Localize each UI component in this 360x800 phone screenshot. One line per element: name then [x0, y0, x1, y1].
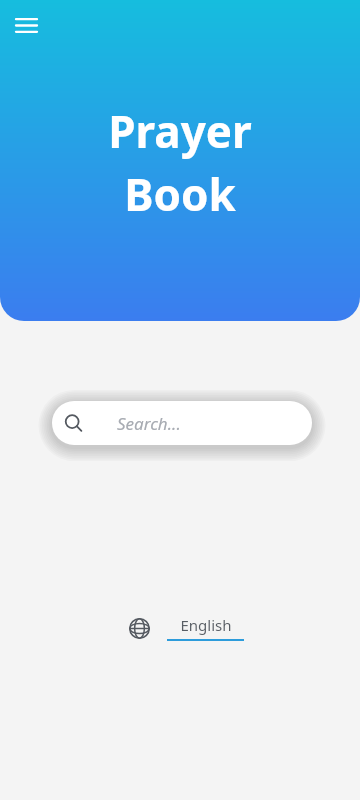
staticText: Search...: [117, 412, 181, 435]
staticText: English: [180, 615, 232, 635]
button[interactable]: Language: [129, 615, 244, 641]
other: Language: [129, 618, 150, 639]
button[interactable]: Search...: [52, 401, 312, 445]
button[interactable]: Open navigation menu: [9, 8, 44, 43]
staticText: Prayer: [108, 101, 252, 161]
staticText: Book: [124, 164, 236, 224]
